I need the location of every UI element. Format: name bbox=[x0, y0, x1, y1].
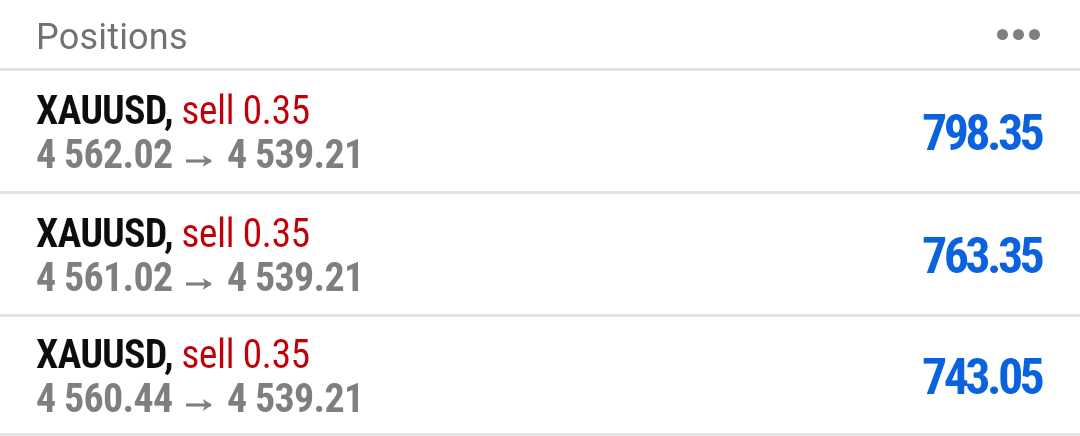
staticText: 743.05 bbox=[922, 348, 1042, 407]
staticText: Positions bbox=[36, 16, 188, 58]
staticText: XAUUSD, sell 0.35 bbox=[36, 210, 310, 257]
staticText: 4 560.44 bbox=[36, 375, 173, 422]
staticText: 4 562.02 bbox=[36, 131, 173, 178]
staticText: XAUUSD, sell 0.35 bbox=[36, 87, 310, 134]
staticText: 4 539.21 bbox=[227, 375, 364, 422]
button[interactable]: XAUUSD, sell 0.35 bbox=[0, 71, 1080, 191]
staticText: XAUUSD, sell 0.35 bbox=[36, 331, 310, 378]
button[interactable]: More options bbox=[979, 0, 1057, 68]
staticText: 763.35 bbox=[922, 227, 1042, 286]
staticText: 4 539.21 bbox=[227, 254, 364, 301]
button[interactable]: XAUUSD, sell 0.35 bbox=[0, 194, 1080, 314]
staticText: 4 561.02 bbox=[36, 254, 173, 301]
staticText: 4 539.21 bbox=[227, 131, 364, 178]
button[interactable]: XAUUSD, sell 0.35 bbox=[0, 317, 1080, 433]
staticText: 798.35 bbox=[922, 104, 1042, 163]
